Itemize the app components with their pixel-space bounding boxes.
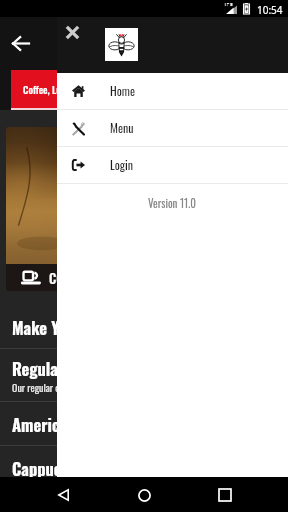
button[interactable]: Cappuccino bbox=[0, 446, 288, 490]
staticText: Home bbox=[110, 82, 136, 100]
button[interactable]: Login bbox=[57, 147, 288, 183]
staticText: Make Your Own bbox=[12, 315, 114, 339]
button[interactable]: Make Your Own bbox=[0, 305, 288, 349]
staticText: Coffee, Luv & Deli bbox=[23, 82, 91, 97]
button[interactable]: Recent apps bbox=[207, 480, 243, 510]
staticText: Cappuccino bbox=[12, 456, 91, 480]
staticText: Version 11.0 bbox=[148, 195, 197, 211]
button[interactable]: Navigate up bbox=[8, 31, 32, 55]
staticText: 10:54 bbox=[257, 3, 283, 17]
staticText: COFFEE bbox=[49, 268, 87, 288]
staticText: Our regular coffee bbox=[12, 380, 78, 395]
button[interactable]: Home bbox=[57, 73, 288, 109]
button[interactable]: Americano bbox=[0, 402, 288, 446]
staticText: Login bbox=[110, 156, 134, 174]
staticText: Regular Coffee bbox=[12, 356, 112, 380]
button[interactable]: Regular Coffee bbox=[0, 349, 288, 402]
button[interactable]: Home bbox=[126, 480, 162, 510]
button[interactable]: Back bbox=[45, 480, 81, 510]
button[interactable]: Close navigation drawer bbox=[60, 20, 84, 44]
button[interactable]: COFFEE bbox=[6, 264, 282, 291]
button[interactable]: Menu bbox=[57, 110, 288, 146]
staticText: Menu bbox=[110, 119, 134, 137]
staticText: Americano bbox=[12, 412, 84, 436]
button[interactable]: Coffee, Luv & Deli bbox=[11, 70, 288, 108]
